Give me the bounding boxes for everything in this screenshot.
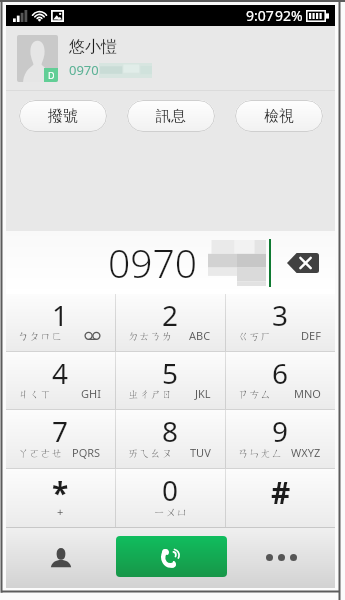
staticText: MNO (294, 386, 321, 401)
staticText: 0970 (108, 236, 198, 289)
staticText: 0 (162, 471, 179, 509)
staticText: 1 (52, 296, 69, 334)
staticText: ㄞㄟㄠㄡ (128, 446, 173, 460)
staticText: GHI (81, 386, 101, 401)
staticText: ㄅㄆㄇㄈ (18, 329, 63, 343)
staticText: 8 (162, 412, 179, 450)
button[interactable]: 3 (226, 294, 335, 351)
staticText: JKL (195, 386, 211, 401)
staticText: 7 (52, 412, 69, 450)
staticText: 悠小愷 (69, 37, 117, 57)
button[interactable]: * (6, 469, 115, 527)
staticText: 訊息 (156, 107, 186, 126)
staticText: 6 (272, 354, 289, 392)
staticText: TUV (190, 445, 211, 460)
staticText: 5 (162, 354, 179, 392)
button[interactable]: More options (258, 534, 304, 580)
staticText: 4 (52, 354, 69, 392)
button[interactable]: 8 (116, 410, 225, 468)
staticText: ㄐㄑㄒ (18, 387, 52, 401)
button[interactable]: 2 (116, 294, 225, 351)
button[interactable]: 9 (226, 410, 335, 468)
staticText: + (57, 504, 64, 519)
button[interactable]: 0 (116, 469, 225, 527)
staticText: ㄢㄣㄤㄥ (238, 446, 283, 460)
button[interactable]: 6 (226, 352, 335, 409)
staticText: WXYZ (291, 445, 321, 460)
staticText: ㄓㄔㄕㄖ (128, 387, 173, 401)
staticText: 檢視 (264, 107, 294, 126)
staticText: PQRS (72, 445, 101, 460)
staticText: 2 (162, 296, 179, 334)
staticText: 92% (275, 6, 303, 25)
staticText: ABC (189, 328, 211, 343)
button[interactable]: Delete (287, 253, 319, 273)
staticText: ㄧㄨㄩ (154, 505, 188, 519)
staticText: 9:07 (246, 6, 274, 25)
button[interactable]: 5 (116, 352, 225, 409)
staticText: ㄉㄊㄋㄌ (128, 329, 173, 343)
staticText: D (48, 69, 55, 81)
button[interactable]: 1 (6, 294, 115, 351)
button[interactable]: # (226, 469, 335, 527)
staticText: ㄗㄘㄙ (238, 387, 272, 401)
staticText: 撥號 (48, 107, 78, 126)
button[interactable]: 檢視 (235, 100, 323, 132)
button[interactable]: 7 (6, 410, 115, 468)
button[interactable]: Call (116, 536, 227, 577)
button[interactable]: 訊息 (127, 100, 215, 132)
staticText: # (271, 472, 291, 513)
staticText: 0970 (69, 61, 99, 79)
staticText: 9 (272, 412, 289, 450)
staticText: * (52, 472, 69, 513)
button[interactable]: Contacts (38, 534, 84, 580)
staticText: ㄚㄛㄜㄝ (18, 446, 63, 460)
button[interactable]: 4 (6, 352, 115, 409)
button[interactable]: 撥號 (19, 100, 107, 132)
staticText: DEF (301, 328, 321, 343)
staticText: 3 (272, 296, 289, 334)
staticText: ㄍㄎㄏ (238, 329, 272, 343)
